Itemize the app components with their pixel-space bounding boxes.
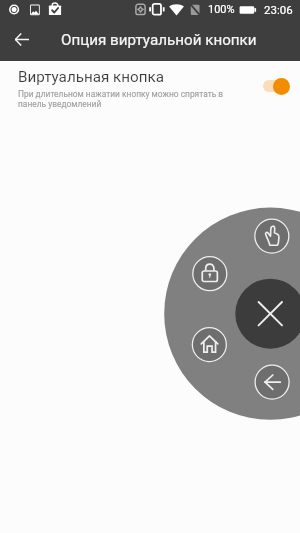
staticText: 23:06 — [264, 3, 293, 16]
button[interactable]: Виртуальная кнопка — [0, 61, 300, 109]
staticText: Опция виртуальной кнопки — [61, 31, 257, 49]
button[interactable]: Back — [0, 18, 43, 61]
button[interactable]: Toggle virtual button — [261, 77, 296, 95]
staticText: 100% — [208, 3, 235, 16]
staticText: Виртуальная кнопка — [18, 68, 164, 86]
staticText: При длительном нажатии кнопку можно спря… — [18, 89, 232, 109]
